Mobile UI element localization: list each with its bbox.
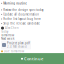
staticText: Today bbox=[1, 30, 8, 33]
staticText: Alex Chen bbox=[5, 26, 19, 30]
staticText: Review the design spec today bbox=[3, 8, 43, 12]
staticText: Fix the list layout bug here bbox=[3, 17, 41, 21]
staticText: Next week bbox=[1, 37, 14, 40]
staticText: Project plan.pdf bbox=[7, 41, 30, 45]
staticText: Update all documentation bbox=[3, 13, 39, 16]
staticText: Continue bbox=[24, 56, 43, 61]
staticText: Ship the release candidate bbox=[3, 22, 40, 25]
staticText: Due tomorrow bbox=[4, 50, 24, 53]
staticText: Morning routine bbox=[3, 2, 27, 5]
staticText: Tomorrow bbox=[1, 33, 14, 37]
button[interactable]: Continue bbox=[0, 53, 64, 64]
staticText: 2.4 MB shared bbox=[7, 45, 27, 48]
